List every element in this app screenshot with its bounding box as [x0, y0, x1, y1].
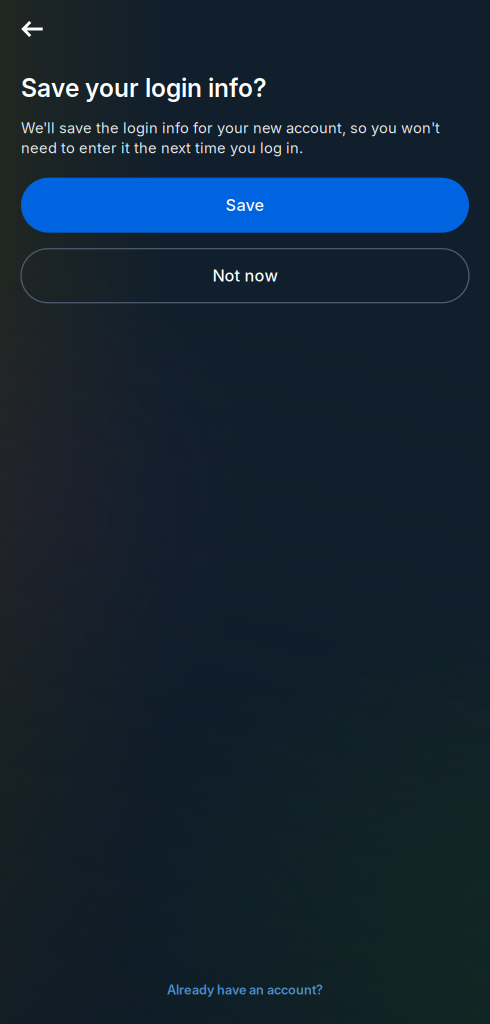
staticText: Not now: [212, 266, 277, 286]
staticText: Save your login info?: [21, 73, 267, 103]
staticText: Save: [225, 195, 264, 215]
button[interactable]: Save: [21, 178, 469, 233]
staticText: Already have an account?: [167, 982, 323, 998]
staticText: We'll save the login info for your new a…: [21, 119, 440, 157]
button[interactable]: Already have an account?: [0, 974, 490, 1006]
button[interactable]: Not now: [21, 249, 469, 303]
button[interactable]: Back: [10, 10, 54, 48]
